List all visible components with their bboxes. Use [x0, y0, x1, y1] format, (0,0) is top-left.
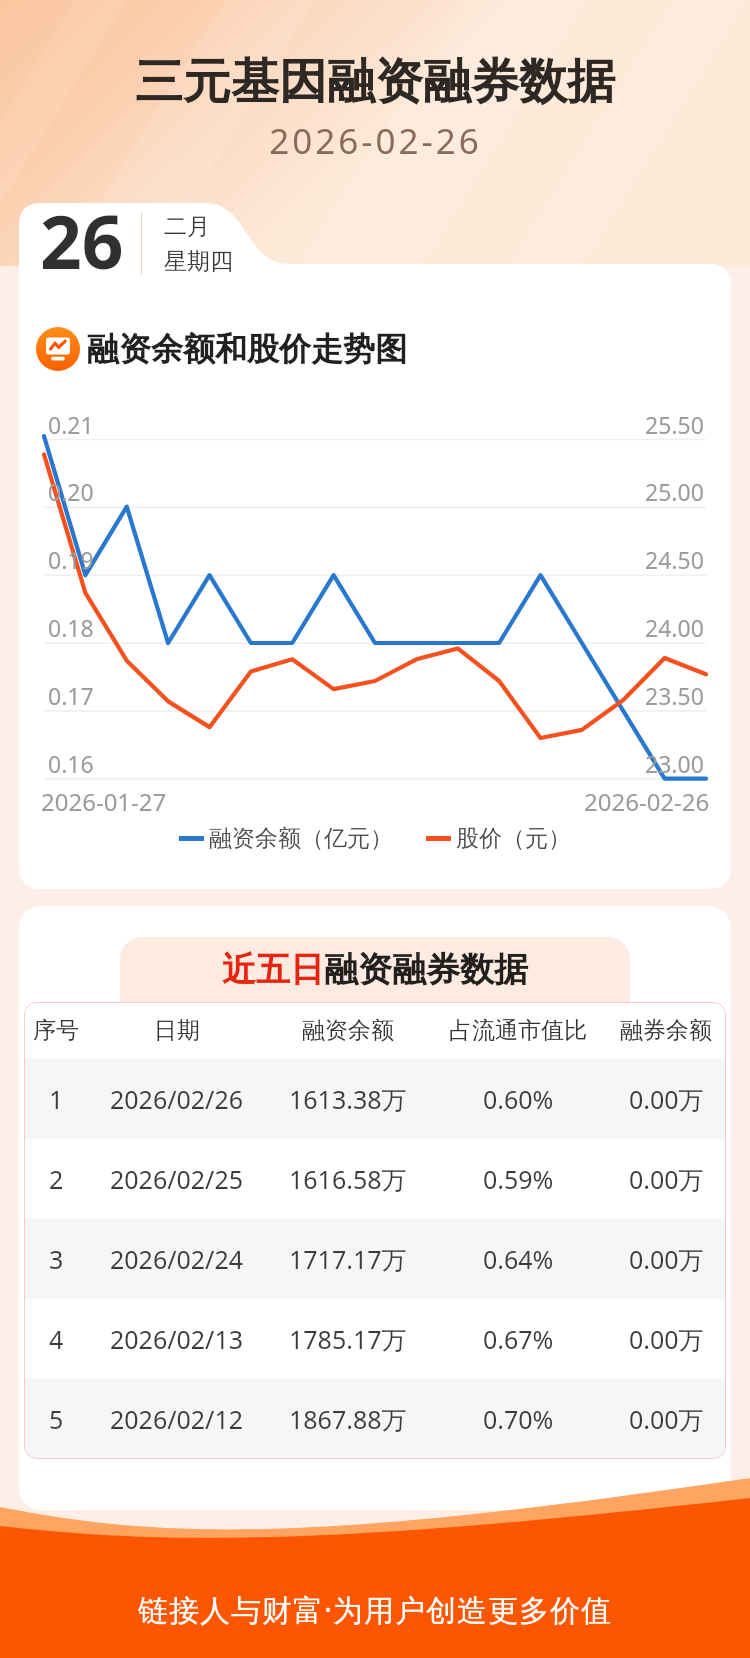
staticText: 25.00 [645, 476, 704, 507]
staticText: 融资余额 [302, 1016, 394, 1045]
button[interactable]: 2 [24, 1139, 726, 1219]
staticText: 0.00万 [629, 1402, 704, 1436]
staticText: 3 [49, 1242, 64, 1276]
staticText: 2026-02-26 [269, 117, 482, 165]
staticText: 近五日 [222, 948, 324, 991]
staticText: 26 [40, 191, 124, 290]
button[interactable]: 走势图 [36, 327, 80, 371]
staticText: 1717.17万 [289, 1242, 407, 1276]
staticText: 1867.88万 [289, 1402, 407, 1436]
staticText: 23.50 [645, 680, 704, 711]
staticText: 0.21 [48, 409, 94, 440]
staticText: 1 [49, 1082, 64, 1116]
staticText: 二月 [164, 212, 210, 241]
staticText: 2 [49, 1162, 64, 1196]
staticText: 融券余额 [620, 1016, 712, 1045]
staticText: 24.00 [645, 612, 704, 643]
staticText: 0.70% [483, 1402, 554, 1436]
staticText: 2026/02/25 [110, 1162, 244, 1196]
staticText: 0.00万 [629, 1322, 704, 1356]
staticText: 融资余额和股价走势图 [87, 329, 407, 369]
staticText: 0.00万 [629, 1242, 704, 1276]
staticText: 2026-02-26 [584, 785, 710, 818]
staticText: 0.19 [48, 544, 94, 575]
staticText: 股价（元） [456, 824, 571, 853]
staticText: 0.17 [48, 680, 94, 711]
staticText: 1613.38万 [289, 1082, 407, 1116]
staticText: 融资余额（亿元） [209, 824, 393, 853]
staticText: 0.60% [483, 1082, 554, 1116]
staticText: 0.16 [48, 748, 94, 779]
staticText: 2026/02/26 [110, 1082, 244, 1116]
staticText: 0.20 [48, 476, 94, 507]
staticText: 0.00万 [629, 1162, 704, 1196]
button[interactable]: 1 [24, 1059, 726, 1139]
staticText: 0.67% [483, 1322, 554, 1356]
staticText: 星期四 [164, 247, 233, 276]
staticText: 24.50 [645, 544, 704, 575]
staticText: 5 [49, 1402, 64, 1436]
button[interactable]: 5 [24, 1379, 726, 1459]
staticText: 占流通市值比 [449, 1016, 587, 1045]
staticText: 25.50 [645, 409, 704, 440]
staticText: 2026/02/24 [110, 1242, 244, 1276]
staticText: 序号 [33, 1016, 79, 1045]
staticText: 1785.17万 [289, 1322, 407, 1356]
staticText: 23.00 [645, 748, 704, 779]
staticText: 三元基因融资融券数据 [135, 52, 615, 112]
staticText: 链接人与财富·为用户创造更多价值 [0, 1589, 750, 1630]
staticText: 0.59% [483, 1162, 554, 1196]
staticText: 0.64% [483, 1242, 554, 1276]
button[interactable]: 4 [24, 1299, 726, 1379]
staticText: 融资融券数据 [324, 948, 528, 991]
staticText: 2026/02/13 [110, 1322, 244, 1356]
staticText: 4 [49, 1322, 64, 1356]
staticText: 2026/02/12 [110, 1402, 244, 1436]
staticText: 0.00万 [629, 1082, 704, 1116]
staticText: 2026-01-27 [41, 785, 167, 818]
button[interactable]: 3 [24, 1219, 726, 1299]
staticText: 1616.58万 [289, 1162, 407, 1196]
staticText: 日期 [154, 1016, 200, 1045]
staticText: 0.18 [48, 612, 94, 643]
